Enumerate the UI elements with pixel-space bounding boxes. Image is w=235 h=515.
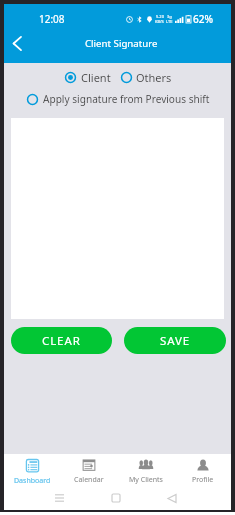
button[interactable]: My Clients: [117, 454, 174, 485]
button[interactable]: Home: [105, 487, 127, 509]
staticText: 12:08: [39, 12, 65, 26]
button[interactable]: Back: [4, 24, 30, 63]
button[interactable]: SAVE: [124, 327, 226, 354]
button[interactable]: Back: [161, 487, 183, 509]
staticText: My Clients: [129, 475, 163, 485]
button[interactable]: Profile: [174, 454, 231, 485]
button[interactable]: CLEAR: [11, 327, 112, 354]
staticText: Dashboard: [14, 476, 51, 485]
staticText: CLEAR: [42, 333, 81, 349]
button[interactable]: Calendar: [60, 454, 117, 485]
button[interactable]: Client: [64, 70, 111, 85]
staticText: SAVE: [160, 333, 191, 349]
button[interactable]: Dashboard: [4, 454, 60, 485]
staticText: Apply signature from Previous shift: [43, 92, 210, 106]
button[interactable]: Recents: [48, 487, 70, 509]
staticText: Client Signature: [85, 37, 158, 50]
staticText: 5.20: [156, 14, 164, 19]
staticText: Profile: [192, 475, 214, 485]
staticText: KB/S: [155, 19, 164, 24]
staticText: Others: [136, 70, 172, 85]
staticText: 62%: [193, 12, 213, 26]
staticText: 3g: [167, 14, 172, 19]
staticText: Client: [81, 70, 111, 85]
button[interactable]: Others: [120, 70, 172, 85]
button[interactable]: Apply signature from Previous shift: [26, 92, 210, 106]
staticText: Calendar: [74, 475, 104, 485]
staticText: LTE: [166, 19, 173, 24]
